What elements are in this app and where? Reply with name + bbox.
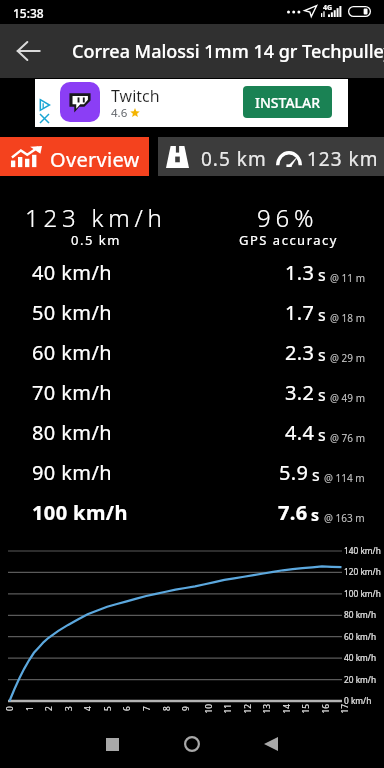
staticText: 8 xyxy=(161,706,172,711)
staticText: @ 18 m xyxy=(330,311,365,325)
button[interactable]: 70 km/h xyxy=(0,372,384,412)
staticText: 80 km/h xyxy=(344,609,377,620)
button[interactable]: 60 km/h xyxy=(0,332,384,372)
staticText: 4G xyxy=(323,3,333,13)
staticText: @ 163 m xyxy=(324,511,365,525)
staticText: s xyxy=(318,264,326,286)
staticText: Correa Malossi 1mm 14 gr Techpulley 2000 xyxy=(72,39,384,64)
staticText: 15:38 xyxy=(13,5,44,21)
staticText: 14 xyxy=(280,703,291,713)
button[interactable]: Recent apps xyxy=(86,720,138,768)
staticText: s xyxy=(312,464,320,486)
staticText: 1 xyxy=(24,706,35,711)
staticText: 16 xyxy=(319,703,330,713)
staticText: 120 km/h xyxy=(344,566,381,577)
staticText: 40 km/h xyxy=(344,652,377,663)
staticText: 50 km/h xyxy=(32,299,113,326)
staticText: 3.2 xyxy=(285,379,315,406)
staticText: @ 114 m xyxy=(324,471,365,485)
staticText: 80 km/h xyxy=(32,419,113,446)
staticText: 100 km/h xyxy=(344,588,381,599)
button[interactable]: 40 km/h xyxy=(0,252,384,292)
staticText: 5.9 xyxy=(279,459,309,486)
staticText: INSTALAR xyxy=(255,93,321,112)
staticText: 123 km xyxy=(307,146,379,172)
staticText: 4.6 xyxy=(111,105,128,121)
staticText: 0 km/h xyxy=(344,695,372,706)
staticText: 4 xyxy=(82,706,93,711)
staticText: 1.3 xyxy=(285,259,315,286)
button[interactable]: Back xyxy=(1,24,55,78)
staticText: 2.3 xyxy=(285,339,315,366)
staticText: s xyxy=(318,424,326,446)
staticText: 0 xyxy=(4,706,15,711)
staticText: @ 49 m xyxy=(330,391,365,405)
staticText: 0.5 km xyxy=(201,146,267,172)
staticText: s xyxy=(311,504,320,526)
staticText: 0.5 km xyxy=(71,231,121,249)
button[interactable]: 80 km/h xyxy=(0,412,384,452)
staticText: 60 km/h xyxy=(344,631,377,642)
staticText: 60 km/h xyxy=(32,339,113,366)
staticText: 3 xyxy=(63,706,74,711)
staticText: @ 11 m xyxy=(330,271,365,285)
staticText: 9 xyxy=(180,706,191,711)
staticText: 15 xyxy=(299,703,310,713)
staticText: 7 xyxy=(141,706,152,711)
staticText: @ 29 m xyxy=(330,351,365,365)
staticText: 123 km/h xyxy=(25,201,167,234)
staticText: 4.4 xyxy=(285,419,315,446)
staticText: @ 76 m xyxy=(330,431,365,445)
staticText: 11 xyxy=(221,703,232,713)
staticText: 6 xyxy=(121,706,132,711)
button[interactable]: Home xyxy=(166,720,218,768)
button[interactable]: Overview xyxy=(0,137,149,176)
staticText: 5 xyxy=(102,706,113,711)
staticText: Overview xyxy=(50,146,140,173)
staticText: 7.6 xyxy=(278,499,308,526)
staticText: s xyxy=(318,384,326,406)
staticText: 12 xyxy=(241,703,252,713)
staticText: s xyxy=(318,344,326,366)
staticText: 1.7 xyxy=(285,299,315,326)
staticText: 10 xyxy=(202,703,213,713)
staticText: 17 xyxy=(338,703,349,713)
button[interactable]: 50 km/h xyxy=(0,292,384,332)
staticText: 13 xyxy=(260,703,271,713)
staticText: 2 xyxy=(43,706,54,711)
staticText: 100 km/h xyxy=(32,499,128,526)
staticText: 40 km/h xyxy=(32,259,113,286)
staticText: 96% xyxy=(257,201,319,234)
staticText: 90 km/h xyxy=(32,459,113,486)
button[interactable]: INSTALAR xyxy=(243,86,332,118)
staticText: 20 km/h xyxy=(344,674,377,685)
button[interactable]: 90 km/h xyxy=(0,452,384,492)
staticText: s xyxy=(318,304,326,326)
staticText: GPS accuracy xyxy=(239,231,338,249)
staticText: Twitch xyxy=(111,85,160,107)
button[interactable]: 0.5 km xyxy=(158,137,384,176)
button[interactable]: Back xyxy=(245,720,297,768)
button[interactable]: 100 km/h xyxy=(0,492,384,532)
staticText: 140 km/h xyxy=(344,545,381,556)
staticText: 70 km/h xyxy=(32,379,113,406)
